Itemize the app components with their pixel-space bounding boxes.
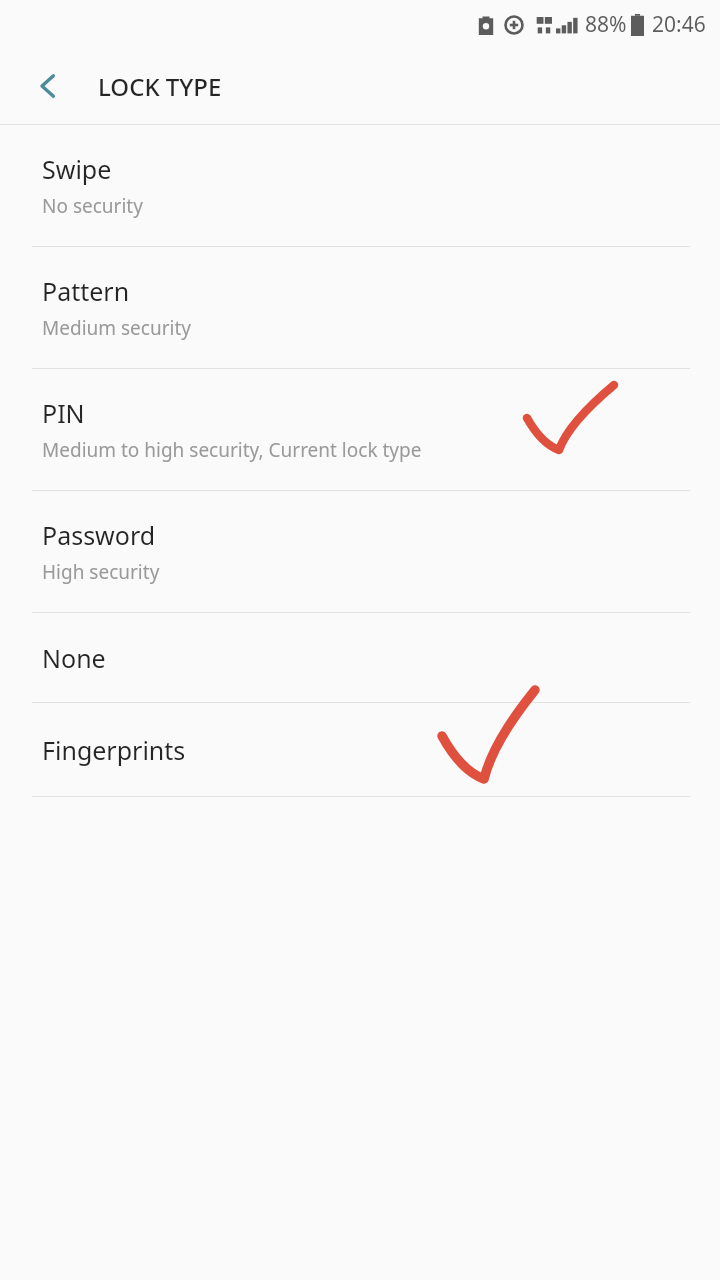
staticText: PIN	[42, 396, 85, 430]
staticText: No security	[42, 193, 143, 219]
staticText: LOCK TYPE	[98, 70, 222, 103]
staticText: Fingerprints	[42, 733, 186, 767]
button[interactable]: None	[0, 613, 720, 702]
button[interactable]: Pattern	[0, 247, 720, 368]
button[interactable]: PIN	[0, 369, 720, 490]
staticText: Pattern	[42, 274, 130, 308]
staticText: Password	[42, 518, 156, 552]
staticText: None	[42, 641, 106, 675]
staticText: Medium security	[42, 315, 191, 341]
staticText: High security	[42, 559, 160, 585]
button[interactable]: Fingerprints	[0, 703, 720, 796]
staticText: Medium to high security, Current lock ty…	[42, 437, 422, 463]
staticText: 88%	[585, 10, 627, 39]
staticText: 20:46	[652, 10, 706, 39]
button[interactable]: Password	[0, 491, 720, 612]
button[interactable]: Swipe	[0, 125, 720, 246]
staticText: Swipe	[42, 152, 112, 186]
button[interactable]: Back	[20, 58, 76, 114]
